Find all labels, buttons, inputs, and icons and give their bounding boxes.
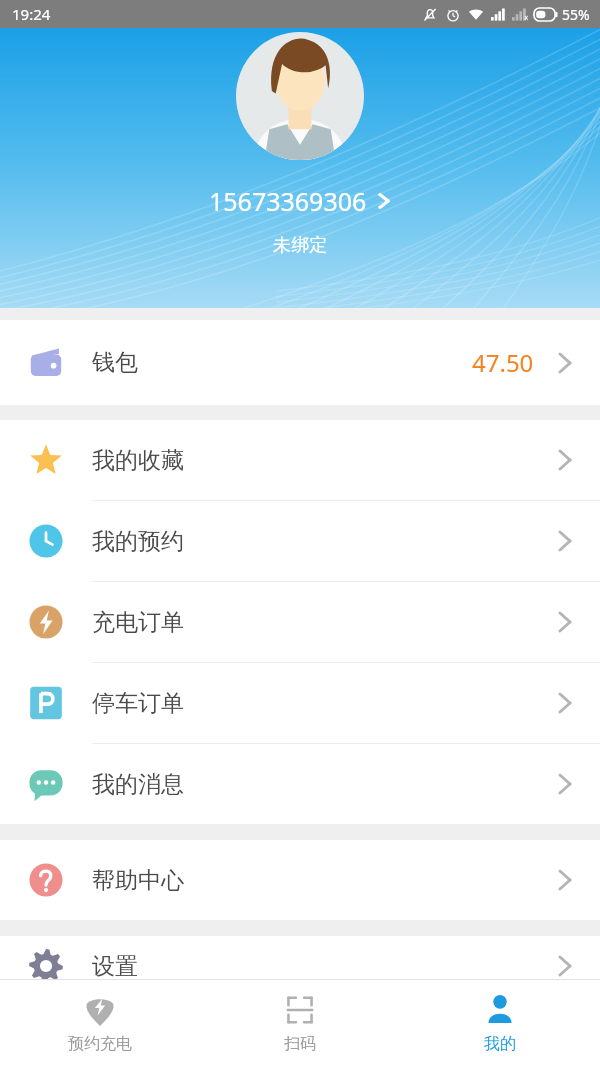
button[interactable]: 扫码 (200, 980, 400, 1067)
staticText: 未绑定 (273, 234, 327, 257)
staticText: 47.50 (472, 346, 534, 379)
staticText: 55% (562, 5, 590, 24)
staticText: 我的 (484, 1034, 516, 1054)
staticText: 帮助中心 (92, 866, 184, 895)
button[interactable]: 停车订单 (0, 663, 600, 743)
button[interactable]: 15673369306 (201, 182, 399, 220)
staticText: 预约充电 (68, 1034, 132, 1054)
staticText: 15673369306 (209, 184, 367, 218)
button[interactable]: 我的消息 (0, 744, 600, 824)
staticText: 我的消息 (92, 770, 184, 799)
staticText: 钱包 (92, 348, 138, 377)
button[interactable]: 我的收藏 (0, 420, 600, 500)
staticText: 我的预约 (92, 527, 184, 556)
staticText: 停车订单 (92, 689, 184, 718)
staticText: 设置 (92, 952, 138, 981)
button[interactable]: 我的 (400, 980, 600, 1067)
button[interactable]: Avatar (236, 32, 364, 160)
button[interactable]: 充电订单 (0, 582, 600, 662)
button[interactable]: 帮助中心 (0, 840, 600, 920)
staticText: 我的收藏 (92, 446, 184, 475)
staticText: 充电订单 (92, 608, 184, 637)
button[interactable]: 预约充电 (0, 980, 200, 1067)
button[interactable]: 我的预约 (0, 501, 600, 581)
button[interactable]: 钱包 (0, 320, 600, 405)
button[interactable]: 设置 (0, 936, 600, 996)
staticText: 扫码 (284, 1034, 316, 1054)
staticText: 19:24 (12, 4, 51, 24)
